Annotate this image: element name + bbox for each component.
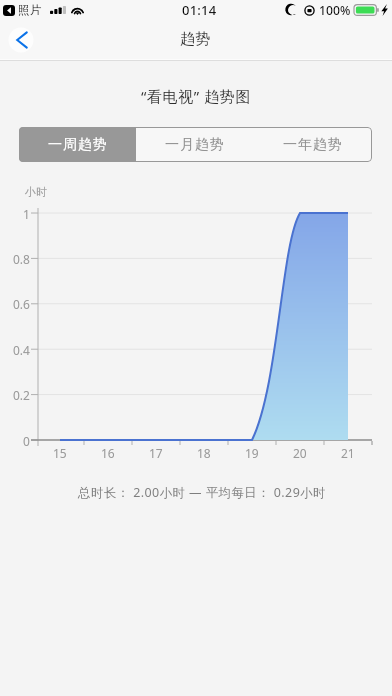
staticText: 一周趋势 (48, 136, 108, 154)
staticText: 1 (23, 206, 30, 222)
staticText: 100% (319, 2, 351, 19)
staticText: 19 (245, 445, 259, 461)
staticText: 趋势 (180, 30, 212, 49)
staticText: “看电视” 趋势图 (141, 86, 252, 106)
staticText: 0.2 (13, 387, 30, 403)
staticText: 0 (23, 433, 30, 449)
staticText: 一年趋势 (283, 136, 343, 154)
staticText: 20 (293, 445, 307, 461)
staticText: 21 (341, 445, 355, 461)
staticText: 0.6 (13, 296, 30, 312)
staticText: 一月趋势 (165, 136, 225, 154)
staticText: 15 (53, 445, 67, 461)
staticText: 0.8 (13, 251, 30, 267)
staticText: 18 (197, 445, 211, 461)
staticText: 17 (149, 445, 163, 461)
staticText: 总时长： 2.00小时 — 平均每日： 0.29小时 (78, 484, 327, 501)
button[interactable]: Back (5, 20, 37, 59)
staticText: 0.4 (13, 342, 30, 358)
staticText: 照片 (18, 3, 42, 17)
staticText: 01:14 (182, 1, 217, 19)
button[interactable]: 一年趋势 (254, 127, 372, 162)
staticText: 16 (101, 445, 115, 461)
button[interactable]: 一周趋势 (19, 127, 136, 162)
button[interactable]: 一月趋势 (136, 127, 254, 162)
staticText: 小时 (25, 185, 47, 199)
